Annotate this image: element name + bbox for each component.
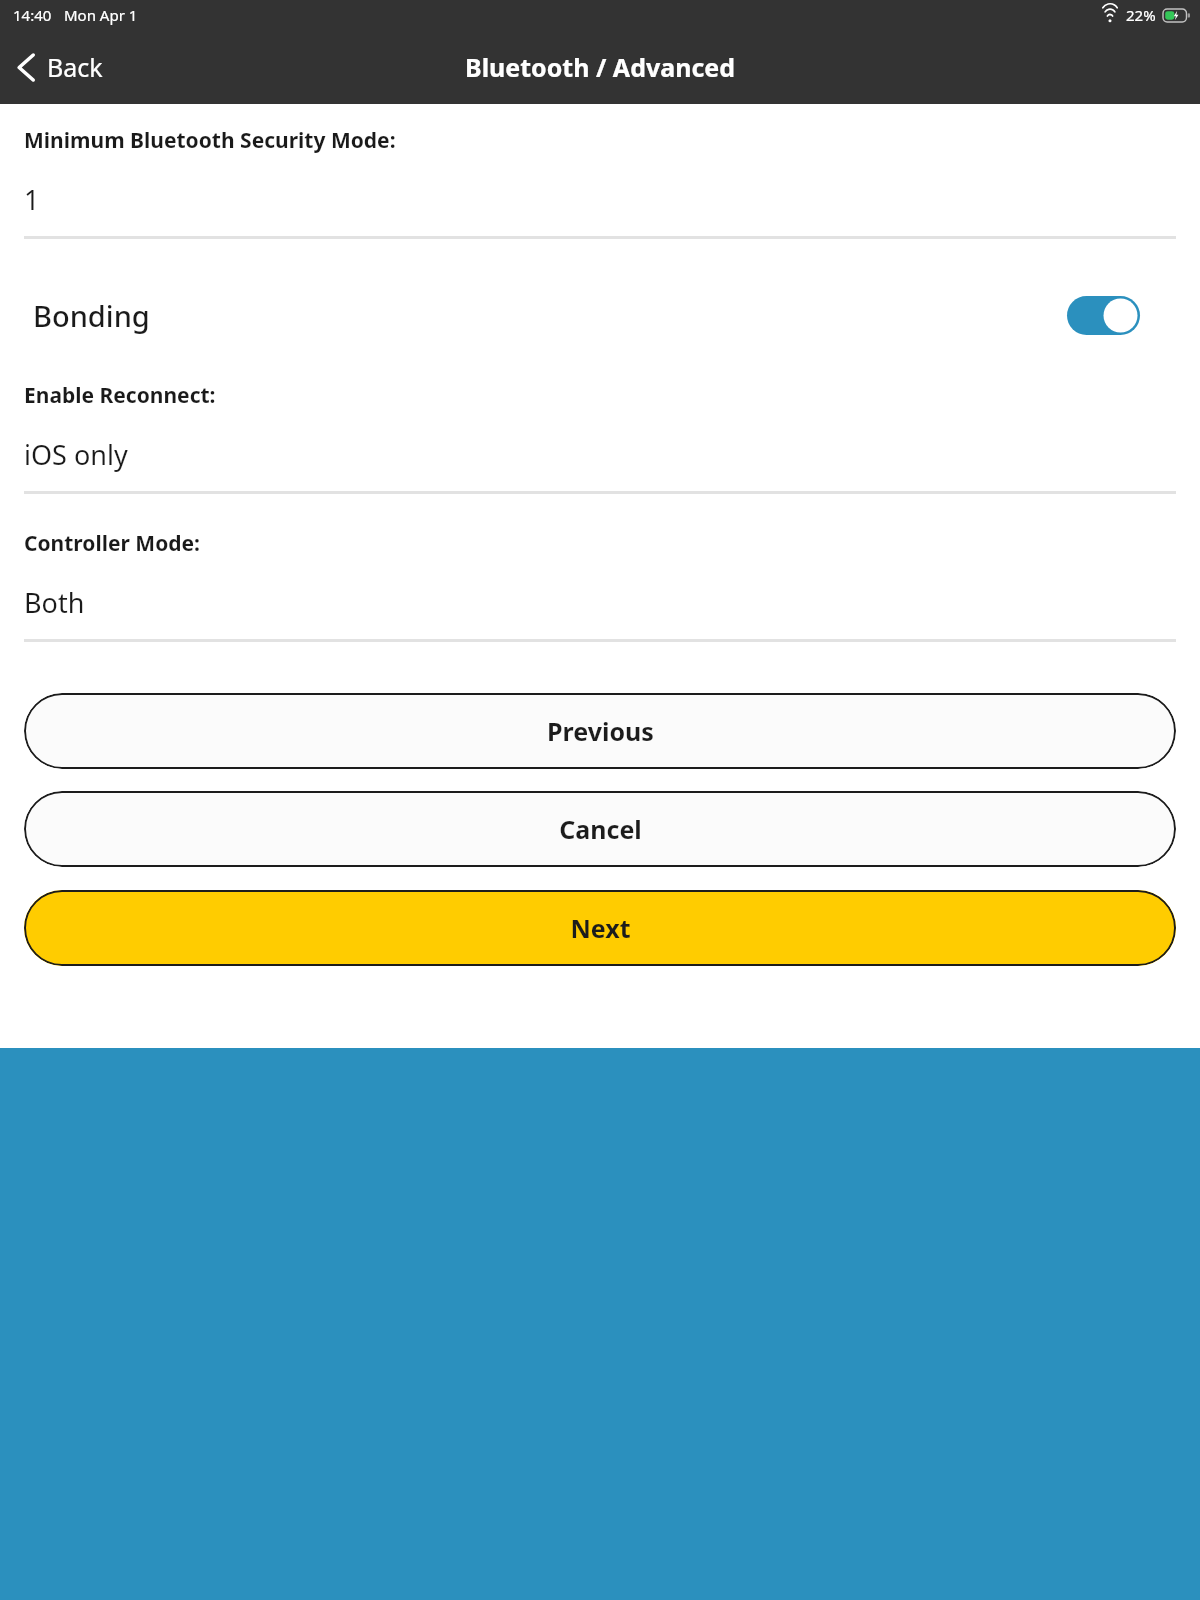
- button[interactable]: Next: [24, 890, 1176, 966]
- staticText: Mon Apr 1: [64, 5, 138, 25]
- button[interactable]: Bonding: [0, 286, 1200, 344]
- staticText: Both: [24, 584, 85, 621]
- staticText: Bluetooth / Advanced: [465, 50, 736, 84]
- staticText: 22%: [1126, 5, 1156, 25]
- staticText: Next: [570, 911, 631, 945]
- button[interactable]: 1: [0, 181, 1200, 218]
- staticText: 14:40: [13, 5, 52, 25]
- staticText: Cancel: [559, 812, 642, 846]
- button[interactable]: iOS only: [0, 436, 1200, 473]
- button[interactable]: Back: [0, 30, 121, 104]
- staticText: iOS only: [24, 436, 128, 473]
- button[interactable]: Previous: [24, 693, 1176, 769]
- button[interactable]: Bonding toggle, on: [1067, 296, 1140, 335]
- staticText: Bonding: [33, 296, 1067, 335]
- staticText: Back: [47, 50, 103, 84]
- staticText: Controller Mode:: [24, 529, 201, 558]
- button[interactable]: Cancel: [24, 791, 1176, 867]
- staticText: Minimum Bluetooth Security Mode:: [24, 126, 396, 155]
- staticText: 1: [24, 181, 40, 218]
- staticText: Enable Reconnect:: [24, 381, 216, 410]
- staticText: Previous: [547, 714, 654, 748]
- button[interactable]: Both: [0, 584, 1200, 621]
